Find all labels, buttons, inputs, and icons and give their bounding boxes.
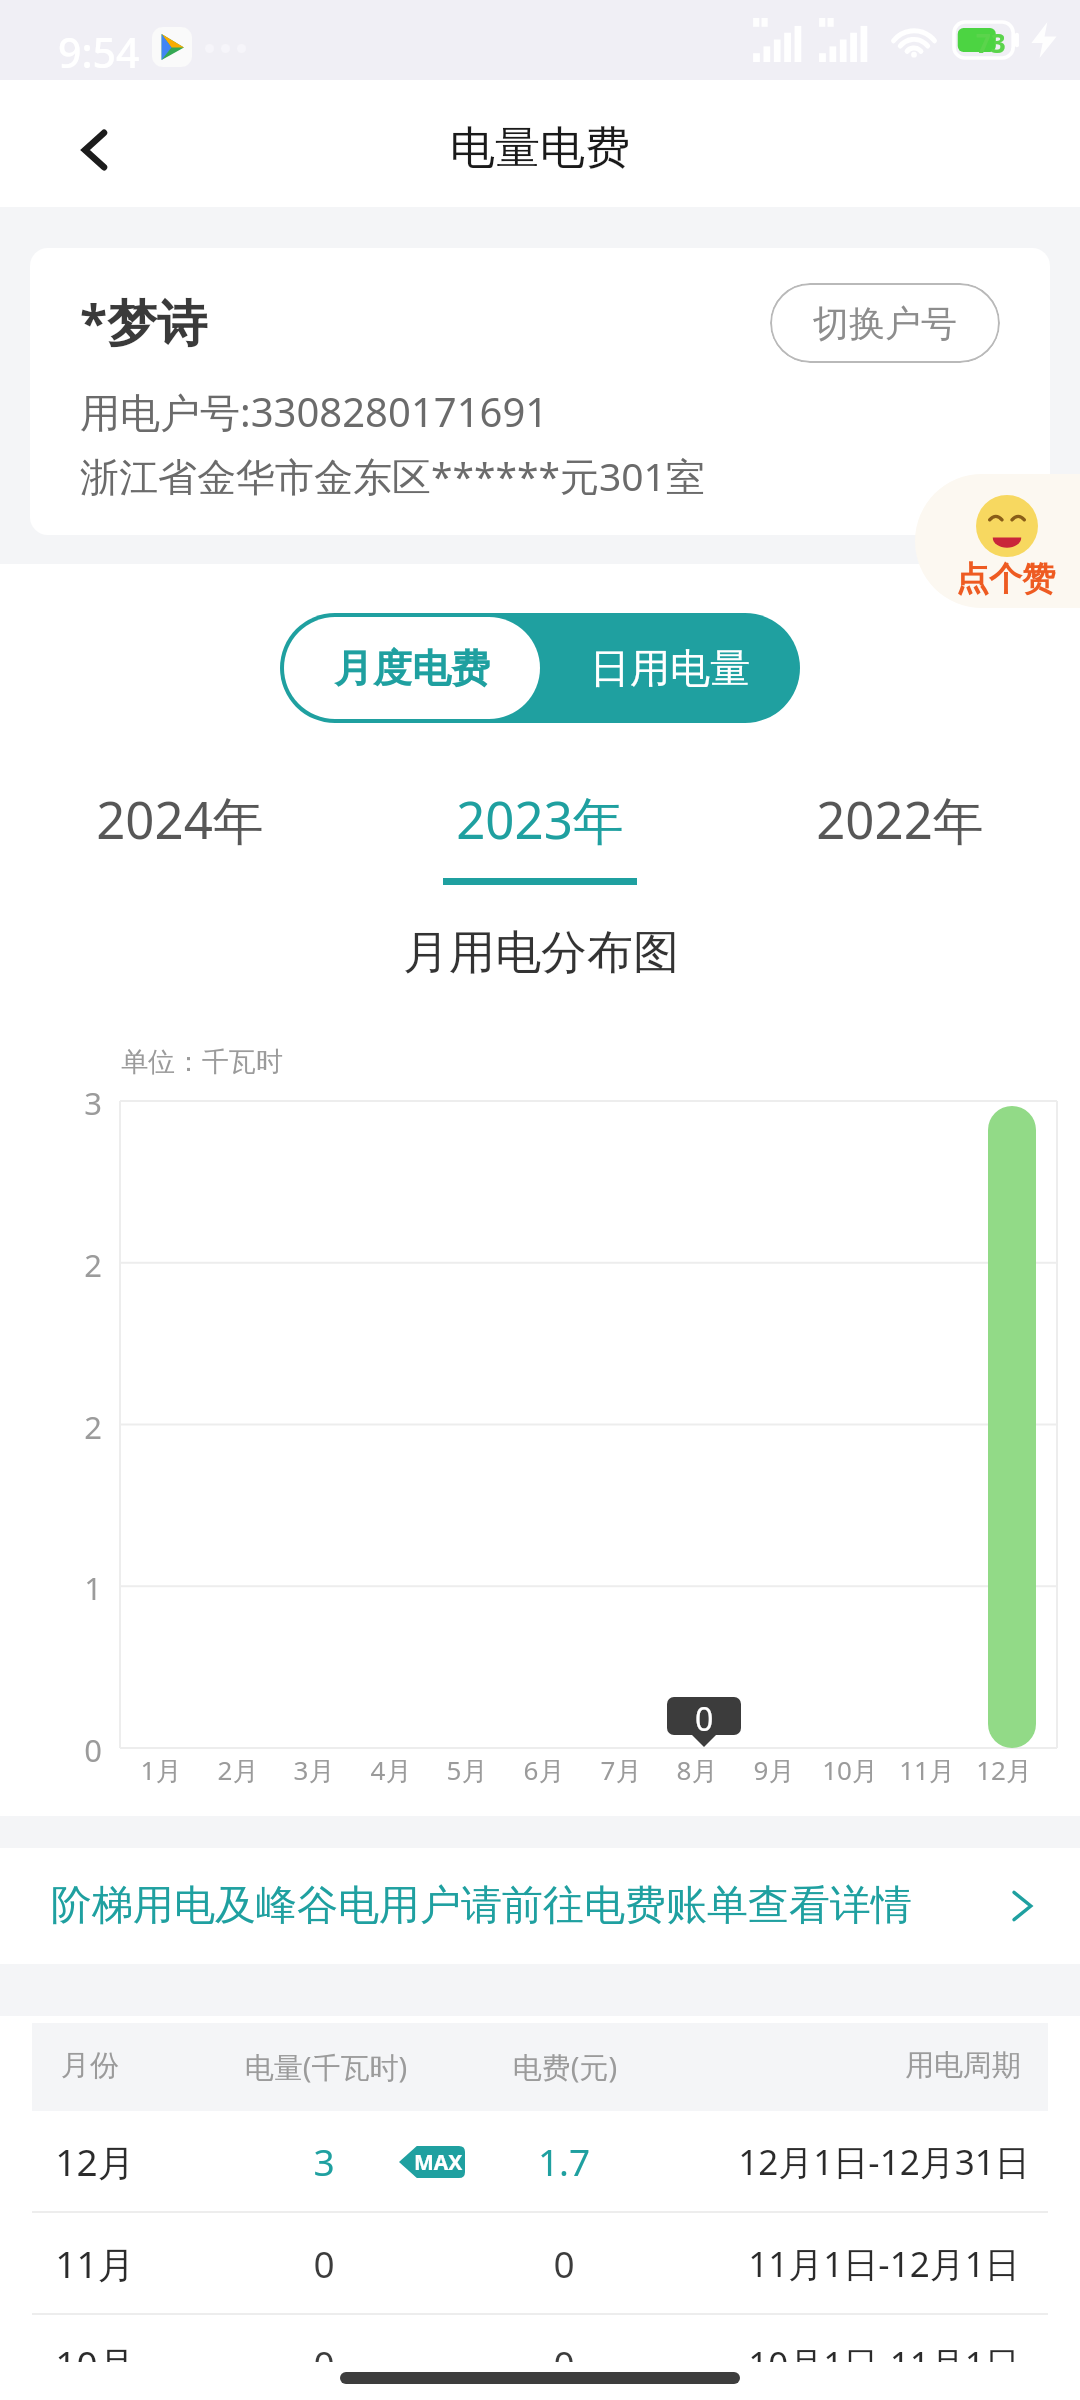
button[interactable]: 2023年 [390, 770, 690, 895]
staticText: 电费(元) [265, 2047, 865, 2087]
staticText: 浙江省金华市金东区******元301室 [80, 449, 705, 502]
staticText: 月份 [0, 2047, 390, 2084]
staticText: 0 [695, 1697, 714, 1735]
staticText: 3 [24, 2136, 624, 2186]
button[interactable]: 日用电量 [540, 613, 800, 723]
staticText: 月度电费 [334, 644, 490, 693]
staticText: 11月1日-12月1日 [684, 2240, 1080, 2288]
staticText: *梦诗 [80, 288, 208, 356]
staticText: 6月 [464, 1752, 624, 1788]
staticText: 5月 [387, 1752, 547, 1788]
staticText: 8月 [617, 1752, 777, 1788]
button[interactable]: 11月 [0, 2213, 1080, 2315]
staticText: MAX [414, 2148, 463, 2177]
staticText: 2024年 [30, 784, 330, 854]
button[interactable]: 2024年 [30, 770, 330, 895]
staticText: 12月 [0, 2136, 395, 2187]
staticText: 用电周期 [663, 2047, 1080, 2084]
staticText: 0 [264, 2338, 864, 2388]
staticText: 2 [42, 1244, 102, 1286]
button[interactable]: 10月 [0, 2313, 1080, 2400]
button[interactable]: 2022年 [750, 770, 1050, 895]
staticText: 12月 [924, 1752, 1080, 1788]
staticText: 电量(千瓦时) [26, 2047, 626, 2087]
staticText: 1 [42, 1567, 102, 1609]
staticText: 切换户号 [813, 301, 957, 346]
staticText: 2 [42, 1406, 102, 1448]
staticText: 阶梯用电及峰谷电用户请前往电费账单查看详情 [51, 1880, 912, 1932]
staticText: 月用电分布图 [241, 924, 841, 982]
staticText: 7月 [541, 1752, 701, 1788]
staticText: 10月 [770, 1752, 930, 1788]
button[interactable]: 点个赞 [915, 474, 1080, 608]
staticText: 1.7 [264, 2136, 864, 2186]
staticText: 0 [42, 1729, 102, 1771]
staticText: 点个赞 [956, 558, 1055, 600]
staticText: 用电户号:3308280171691 [80, 384, 549, 439]
staticText: 2月 [158, 1752, 318, 1788]
staticText: 12月1日-12月31日 [684, 2138, 1080, 2186]
staticText: 3月 [234, 1752, 394, 1788]
staticText: 11月 [847, 1752, 1007, 1788]
staticText: 日用电量 [590, 643, 750, 693]
staticText: 10月 [0, 2338, 395, 2389]
staticText: 2023年 [390, 784, 690, 854]
staticText: 11月 [0, 2238, 395, 2289]
staticText: 0 [264, 2238, 864, 2288]
button[interactable]: 切换户号 [770, 283, 1000, 363]
staticText: 0 [24, 2238, 624, 2288]
button[interactable]: 月度电费 [284, 617, 540, 719]
staticText: 9月 [694, 1752, 854, 1788]
staticText: 2022年 [750, 784, 1050, 854]
button[interactable]: 12月 [0, 2111, 1080, 2213]
staticText: 0 [24, 2338, 624, 2388]
staticText: 电量电费 [240, 120, 840, 177]
staticText: 9:54 [58, 24, 140, 80]
button[interactable]: 阶梯用电及峰谷电用户请前往电费账单查看详情 [0, 1848, 1080, 1964]
staticText: 10月1日-11月1日 [684, 2340, 1080, 2388]
staticText: 单位：千瓦时 [121, 1045, 283, 1079]
button[interactable]: Back [51, 107, 137, 193]
staticText: 1月 [81, 1752, 241, 1788]
staticText: 3 [42, 1082, 102, 1124]
staticText: 4月 [311, 1752, 471, 1788]
staticText: 73 [976, 25, 1006, 60]
